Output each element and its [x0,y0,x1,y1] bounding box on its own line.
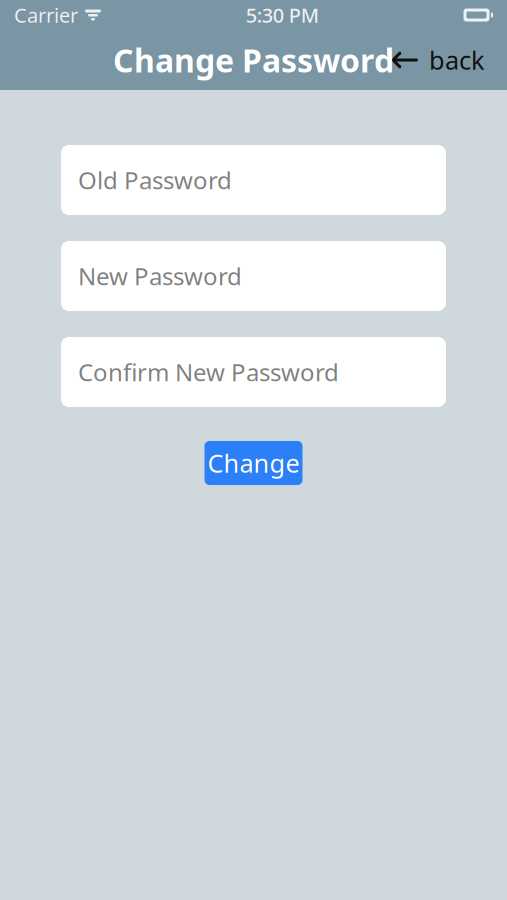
button[interactable]: New Password [61,241,446,311]
staticText: back [429,43,485,77]
staticText: New Password [78,260,242,292]
staticText: Confirm New Password [78,356,339,388]
staticText: Carrier [14,2,78,28]
button[interactable]: Back [381,35,495,85]
button[interactable]: Change [204,441,302,485]
button[interactable]: Confirm New Password [61,337,446,407]
staticText: Change [207,446,299,480]
staticText: 5:30 PM [246,2,319,28]
staticText: Old Password [78,164,232,196]
button[interactable]: Old Password [61,145,446,215]
staticText: Change Password [113,39,394,81]
